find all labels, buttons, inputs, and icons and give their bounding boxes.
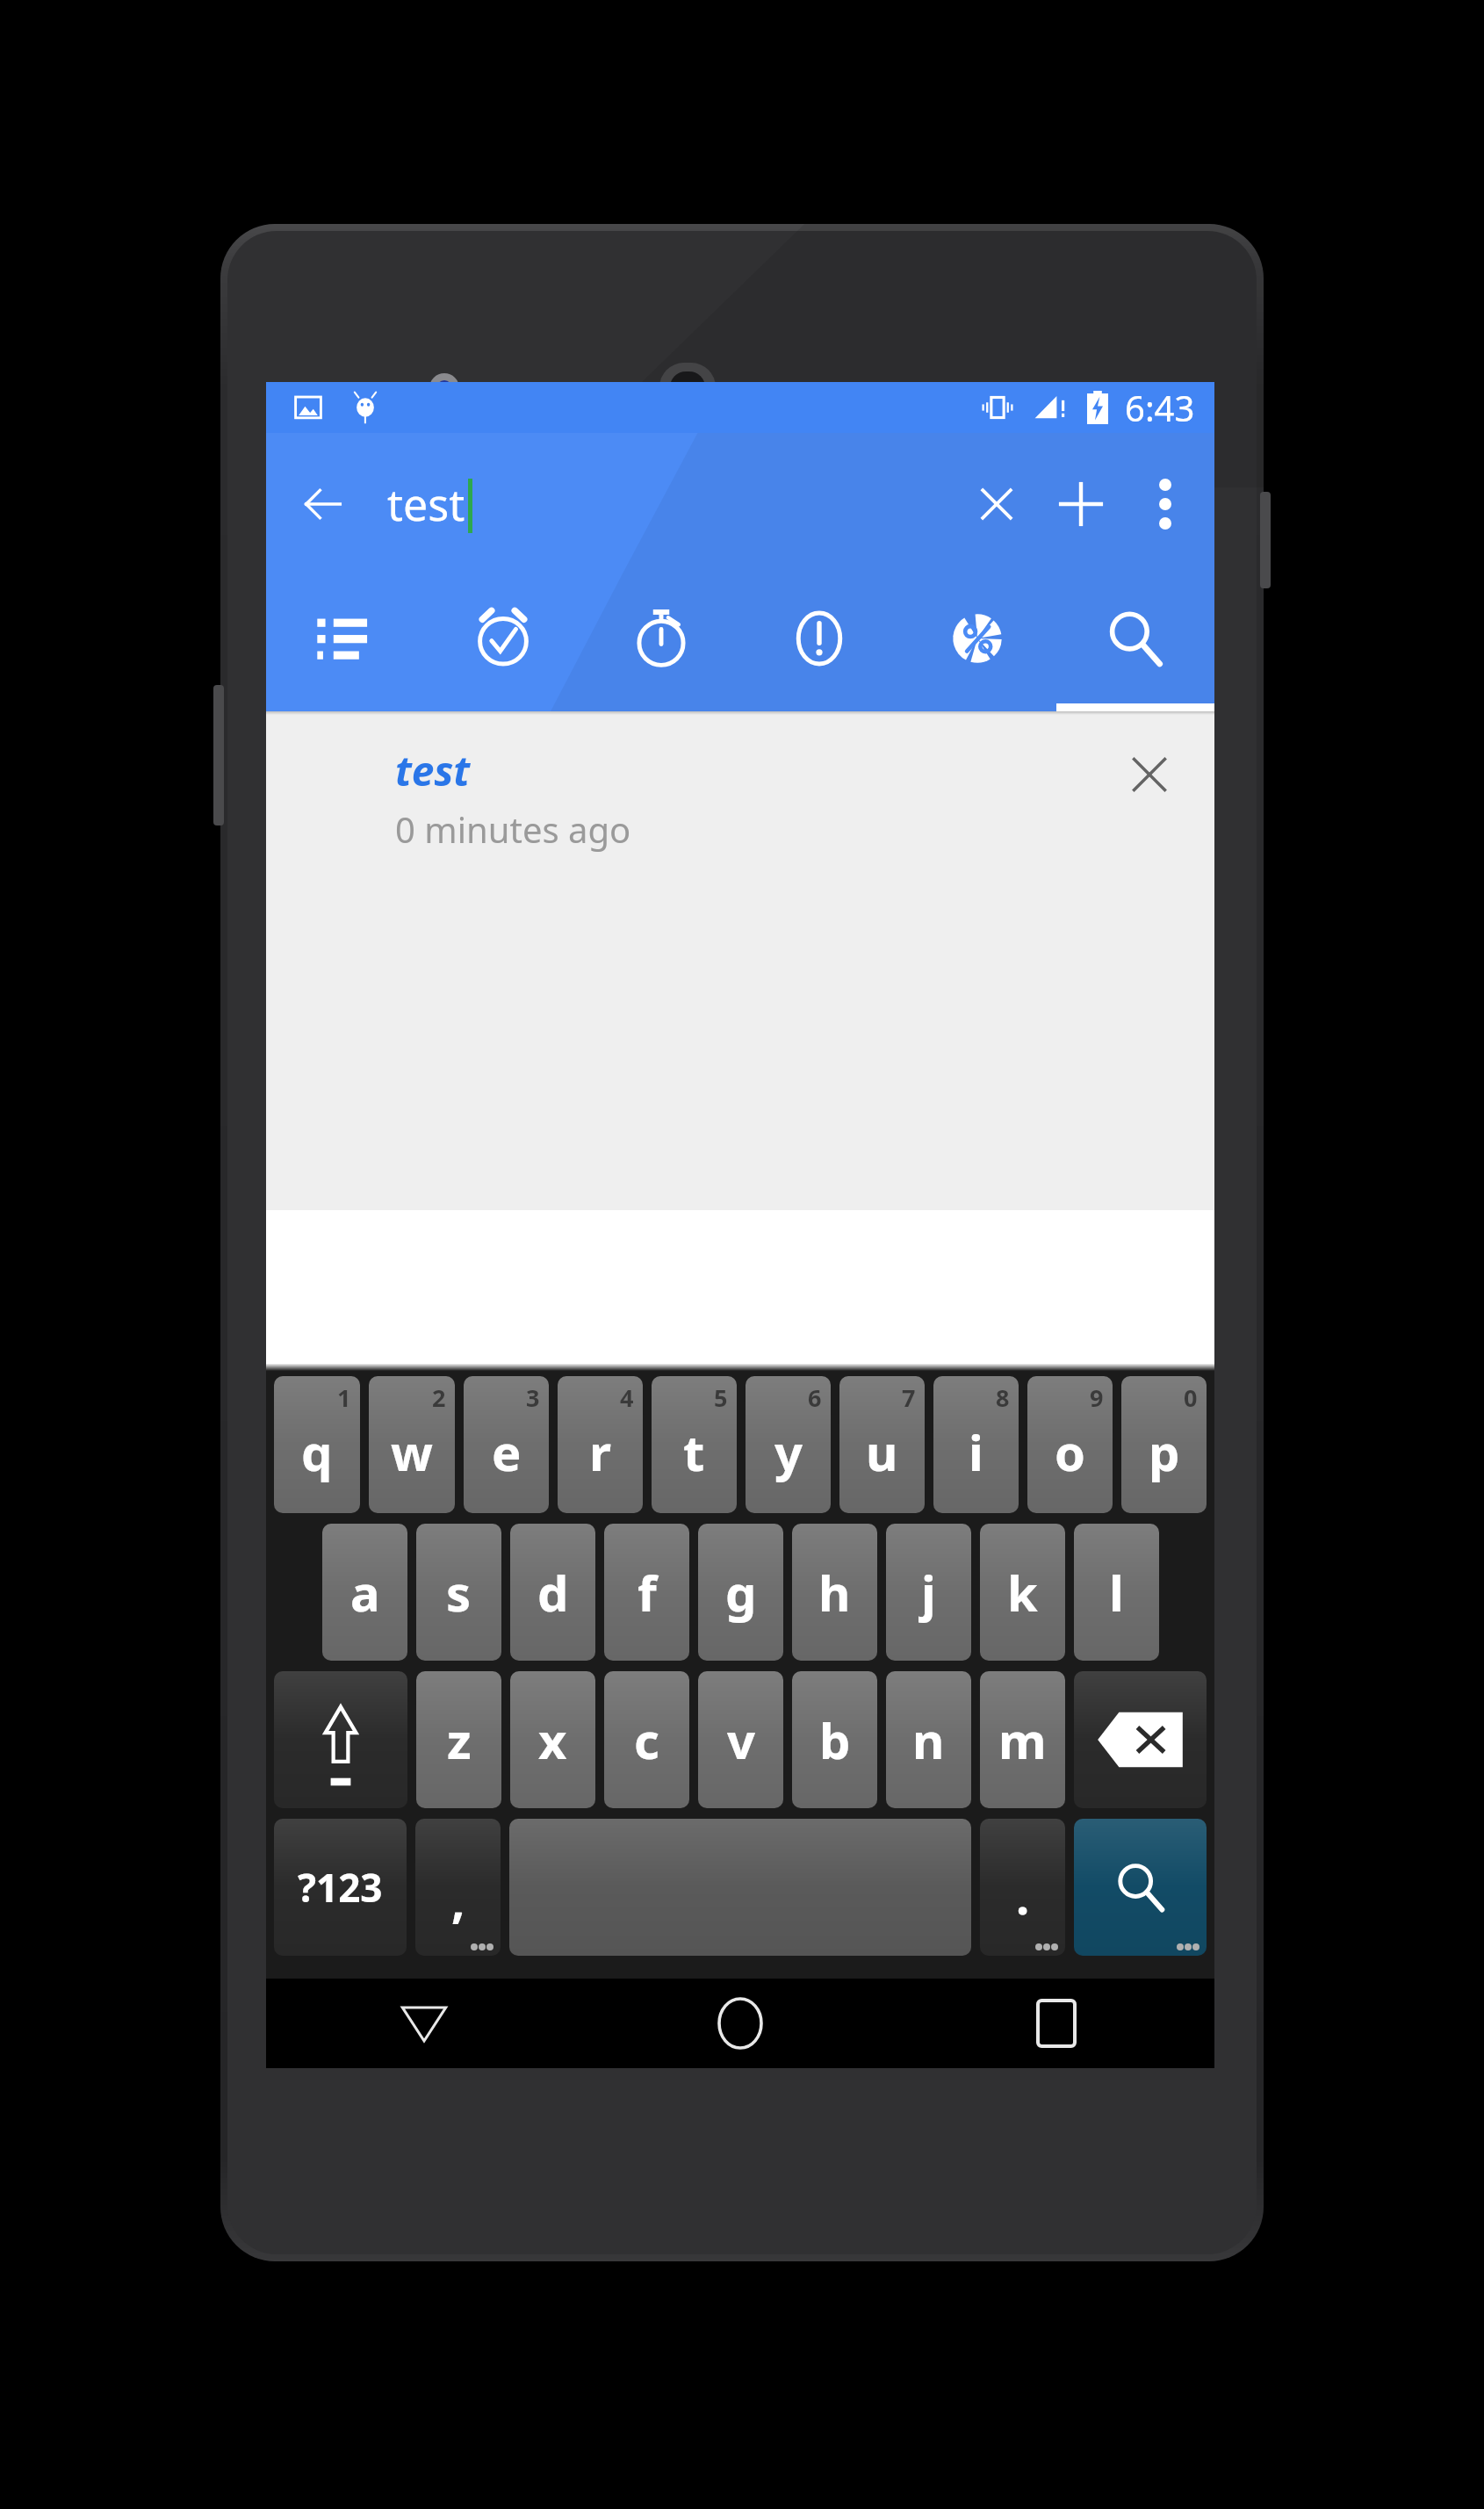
button[interactable]: Shift: [274, 1671, 407, 1808]
button[interactable]: d: [510, 1524, 595, 1661]
button[interactable]: Recents: [898, 1979, 1214, 2068]
staticText: o: [1055, 1418, 1085, 1485]
staticText: 6: [808, 1381, 822, 1414]
button[interactable]: k: [980, 1524, 1065, 1661]
button[interactable]: 2: [369, 1376, 455, 1513]
button[interactable]: Space: [509, 1819, 971, 1956]
button[interactable]: .: [980, 1819, 1065, 1956]
staticText: 8: [996, 1381, 1010, 1414]
staticText: 1: [337, 1381, 351, 1414]
staticText: c: [634, 1706, 659, 1773]
staticText: z: [447, 1706, 472, 1773]
button[interactable]: Delete: [1074, 1671, 1207, 1808]
button[interactable]: More options: [1123, 462, 1207, 546]
button[interactable]: Search: [1074, 1819, 1207, 1956]
button[interactable]: 9: [1027, 1376, 1113, 1513]
button[interactable]: 1: [274, 1376, 360, 1513]
button[interactable]: x: [510, 1671, 595, 1808]
button[interactable]: 8: [933, 1376, 1019, 1513]
staticText: f: [638, 1559, 657, 1626]
button[interactable]: Home: [582, 1979, 898, 2068]
button[interactable]: Timers: [582, 575, 740, 711]
button[interactable]: 5: [652, 1376, 737, 1513]
staticText: test: [395, 743, 471, 798]
staticText: test: [387, 474, 465, 534]
staticText: m: [998, 1706, 1047, 1773]
staticText: e: [492, 1418, 522, 1485]
staticText: s: [446, 1559, 472, 1626]
button[interactable]: test: [266, 711, 1214, 878]
staticText: 0: [1184, 1381, 1198, 1414]
button[interactable]: List: [266, 575, 424, 711]
button[interactable]: a: [322, 1524, 407, 1661]
staticText: ?123: [298, 1861, 383, 1914]
button[interactable]: s: [416, 1524, 501, 1661]
staticText: u: [866, 1418, 898, 1485]
button[interactable]: c: [604, 1671, 689, 1808]
staticText: ,: [451, 1867, 465, 1932]
staticText: 0 minutes ago: [395, 805, 631, 853]
button[interactable]: test: [387, 466, 472, 542]
button[interactable]: Back: [266, 1979, 582, 2068]
button[interactable]: 4: [558, 1376, 643, 1513]
button[interactable]: g: [698, 1524, 783, 1661]
button[interactable]: Search: [1056, 575, 1214, 711]
staticText: n: [912, 1706, 945, 1773]
button[interactable]: 0: [1121, 1376, 1207, 1513]
staticText: b: [819, 1706, 851, 1773]
button[interactable]: ,: [415, 1819, 501, 1956]
button[interactable]: Remove: [1107, 732, 1192, 817]
staticText: h: [818, 1559, 851, 1626]
staticText: g: [725, 1559, 757, 1626]
staticText: .: [1016, 1864, 1030, 1929]
button[interactable]: l: [1074, 1524, 1159, 1661]
staticText: 6:43: [1125, 384, 1195, 431]
staticText: j: [921, 1559, 936, 1626]
button[interactable]: 7: [839, 1376, 925, 1513]
staticText: 7: [902, 1381, 916, 1414]
button[interactable]: Alarms: [424, 575, 582, 711]
staticText: k: [1007, 1559, 1038, 1626]
button[interactable]: Alerts: [740, 575, 898, 711]
button[interactable]: v: [698, 1671, 783, 1808]
staticText: w: [391, 1418, 433, 1485]
staticText: a: [350, 1559, 380, 1626]
staticText: i: [969, 1418, 983, 1485]
staticText: d: [537, 1559, 569, 1626]
staticText: r: [589, 1418, 612, 1485]
staticText: 2: [432, 1381, 446, 1414]
staticText: 3: [526, 1381, 540, 1414]
button[interactable]: m: [980, 1671, 1065, 1808]
button[interactable]: h: [792, 1524, 877, 1661]
button[interactable]: j: [886, 1524, 971, 1661]
button[interactable]: Back: [285, 466, 361, 542]
button[interactable]: z: [416, 1671, 501, 1808]
staticText: 5: [714, 1381, 728, 1414]
button[interactable]: Clear: [955, 462, 1039, 546]
button[interactable]: ?123: [274, 1819, 407, 1956]
staticText: x: [538, 1706, 567, 1773]
button[interactable]: b: [792, 1671, 877, 1808]
staticText: v: [727, 1706, 755, 1773]
button[interactable]: Add: [1039, 462, 1123, 546]
staticText: 9: [1090, 1381, 1104, 1414]
staticText: y: [774, 1418, 803, 1485]
button[interactable]: f: [604, 1524, 689, 1661]
staticText: 4: [620, 1381, 634, 1414]
button[interactable]: 3: [464, 1376, 549, 1513]
staticText: p: [1149, 1418, 1180, 1485]
staticText: l: [1109, 1559, 1124, 1626]
button[interactable]: n: [886, 1671, 971, 1808]
button[interactable]: Stats: [898, 575, 1056, 711]
button[interactable]: 6: [746, 1376, 831, 1513]
staticText: t: [683, 1418, 705, 1485]
staticText: q: [301, 1418, 333, 1485]
